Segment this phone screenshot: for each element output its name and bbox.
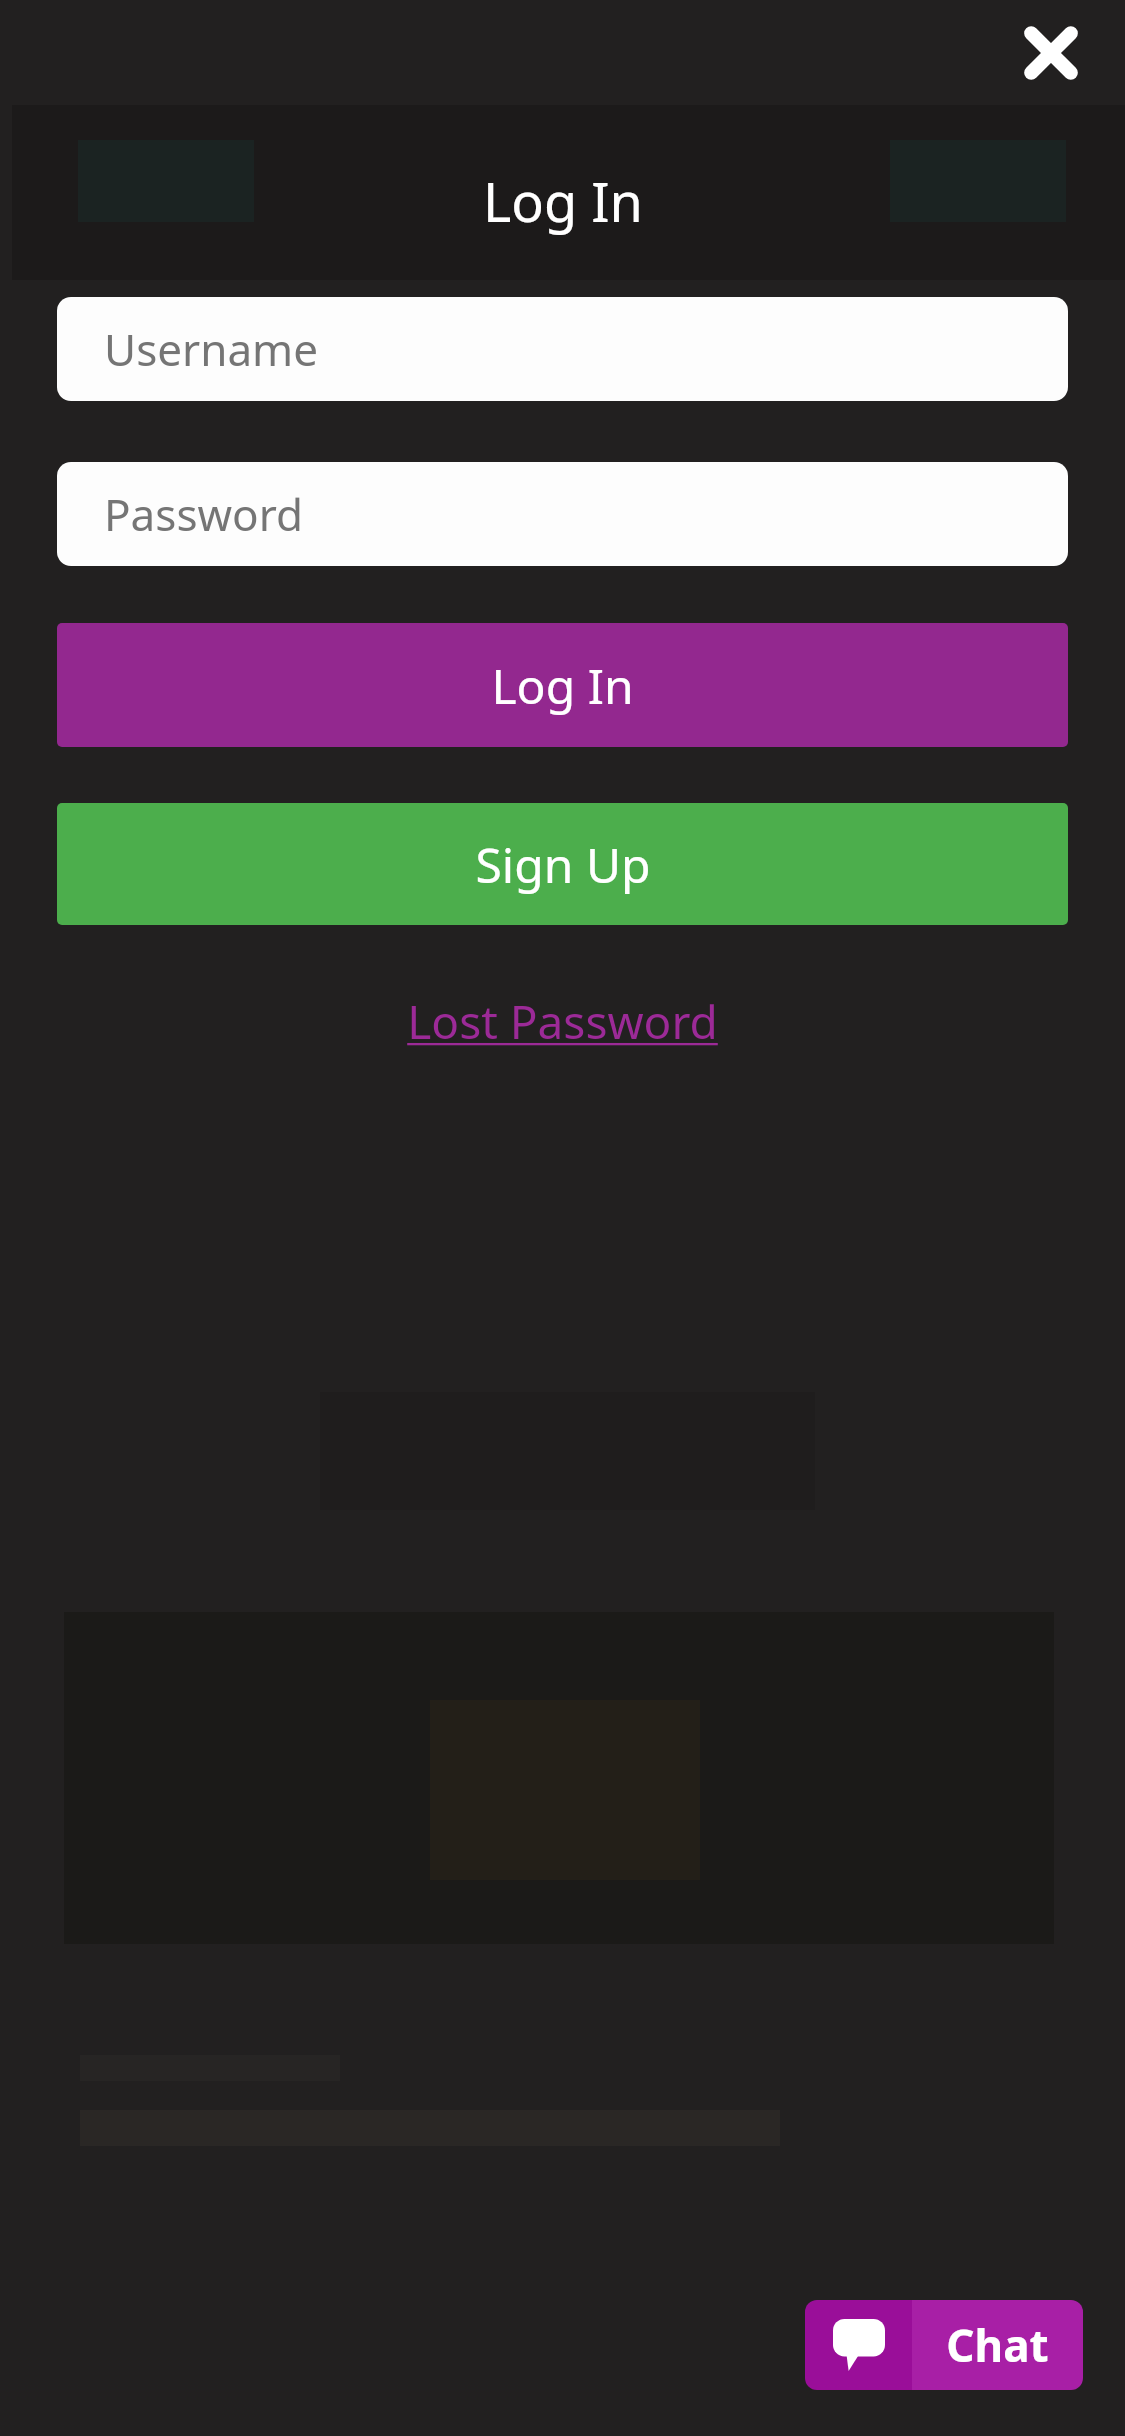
staticText: Username (104, 319, 319, 379)
staticText: Log In (491, 653, 634, 718)
button[interactable]: Lost Password (391, 982, 734, 1061)
button[interactable]: Sign Up (57, 803, 1068, 925)
staticText: Chat (946, 2315, 1049, 2375)
staticText: Lost Password (407, 990, 718, 1053)
button[interactable]: Close (1009, 11, 1093, 95)
button[interactable]: Chat (805, 2300, 1083, 2390)
staticText: Password (104, 484, 304, 544)
staticText: Sign Up (475, 832, 651, 897)
button[interactable]: Log In (57, 623, 1068, 747)
button[interactable]: Username (57, 297, 1068, 401)
button[interactable]: Password (57, 462, 1068, 566)
staticText: Log In (483, 164, 643, 238)
